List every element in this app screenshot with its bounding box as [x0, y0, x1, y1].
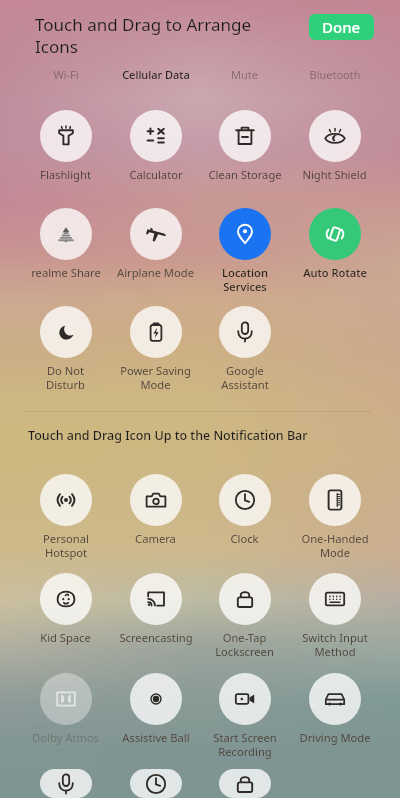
button[interactable]: Personal Hotspot [21, 474, 110, 573]
staticText: Flashlight [40, 167, 91, 182]
staticText: Do Not Disturb [46, 363, 85, 392]
staticText: Start Screen Recording [213, 730, 277, 759]
staticText: Kid Space [40, 630, 91, 645]
staticText: Google Assistant [221, 363, 269, 392]
staticText: One-Handed Mode [301, 531, 369, 560]
button[interactable]: Done [309, 14, 374, 40]
button[interactable]: Location Services [200, 208, 289, 306]
button[interactable]: Mute [200, 67, 289, 82]
button[interactable]: Clock [200, 474, 289, 573]
button[interactable]: Assistive Ball [111, 673, 200, 769]
staticText: Dolby Atmos [32, 730, 99, 745]
staticText: Touch and Drag to Arrange Icons [35, 13, 255, 58]
button[interactable]: Do Not Disturb [21, 306, 110, 404]
button[interactable] [21, 769, 110, 798]
button[interactable]: realme Share [21, 208, 110, 306]
staticText: One-Tap Lockscreen [215, 630, 274, 659]
button[interactable]: Google Assistant [200, 306, 289, 404]
staticText: Screencasting [119, 630, 193, 645]
button[interactable]: Bluetooth [290, 67, 379, 82]
staticText: Cellular Data [122, 67, 190, 82]
button[interactable]: One-Tap Lockscreen [200, 573, 289, 673]
button[interactable]: Calculator [111, 110, 200, 208]
staticText: Airplane Mode [117, 265, 194, 280]
button[interactable]: Cellular Data [111, 67, 200, 82]
button[interactable]: Power Saving Mode [111, 306, 200, 404]
staticText: Assistive Ball [122, 730, 190, 745]
staticText: Driving Mode [299, 730, 371, 745]
staticText: Calculator [129, 167, 183, 182]
button[interactable]: Switch Input Method [290, 573, 379, 673]
staticText: Touch and Drag Icon Up to the Notificati… [28, 427, 308, 444]
button[interactable]: Clean Storage [200, 110, 289, 208]
button[interactable]: Kid Space [21, 573, 110, 673]
button[interactable]: Driving Mode [290, 673, 379, 769]
staticText: Location Services [222, 265, 268, 294]
button[interactable]: Airplane Mode [111, 208, 200, 306]
staticText: Auto Rotate [303, 265, 367, 280]
staticText: Night Shield [302, 167, 367, 182]
button[interactable]: Auto Rotate [290, 208, 379, 306]
staticText: Personal Hotspot [43, 531, 89, 560]
button[interactable]: Wi-Fi [21, 67, 110, 82]
staticText: Wi-Fi [53, 67, 79, 82]
button[interactable]: Night Shield [290, 110, 379, 208]
staticText: Camera [135, 531, 176, 546]
button[interactable]: Flashlight [21, 110, 110, 208]
button[interactable] [200, 769, 289, 798]
staticText: Clock [230, 531, 259, 546]
staticText: Mute [231, 67, 258, 82]
staticText: Power Saving Mode [120, 363, 191, 392]
staticText: Clean Storage [208, 167, 282, 182]
button[interactable]: One-Handed Mode [290, 474, 379, 573]
button[interactable] [111, 769, 200, 798]
staticText: realme Share [31, 265, 101, 280]
button[interactable]: Dolby Atmos [21, 673, 110, 769]
staticText: Bluetooth [309, 67, 361, 82]
staticText: Done [322, 17, 361, 37]
button[interactable]: Camera [111, 474, 200, 573]
button[interactable]: Start Screen Recording [200, 673, 289, 769]
staticText: Switch Input Method [302, 630, 368, 659]
button[interactable]: Screencasting [111, 573, 200, 673]
